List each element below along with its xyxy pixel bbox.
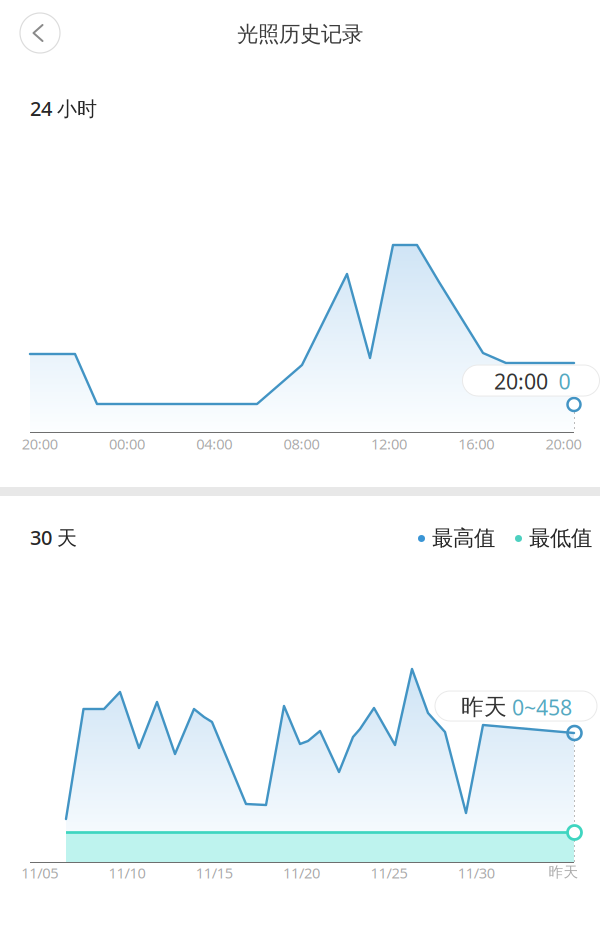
staticText: 11/05 [21, 863, 58, 882]
staticText: 12:00 [371, 434, 407, 453]
staticText: 11/25 [370, 863, 407, 882]
staticText: 20:00 [494, 367, 548, 395]
staticText: 11/20 [283, 863, 320, 882]
staticText: 24 小时 [30, 95, 97, 122]
staticText: 16:00 [458, 434, 494, 453]
staticText: 0~458 [512, 693, 572, 721]
staticText: 11/10 [108, 863, 145, 882]
staticText: 昨天 [461, 693, 507, 721]
staticText: 00:00 [109, 434, 145, 453]
staticText: 20:00 [545, 434, 581, 453]
staticText: 0 [558, 367, 570, 395]
staticText: 昨天 [548, 863, 578, 881]
staticText: 光照历史记录 [237, 21, 363, 47]
staticText: 04:00 [196, 434, 232, 453]
staticText: 20:00 [22, 434, 58, 453]
staticText: 最低值 [529, 525, 592, 551]
button[interactable]: Back [17, 10, 63, 56]
staticText: 11/15 [196, 863, 233, 882]
staticText: 最高值 [432, 525, 495, 551]
staticText: 11/30 [458, 863, 495, 882]
staticText: 08:00 [284, 434, 320, 453]
staticText: 30 天 [30, 524, 77, 551]
